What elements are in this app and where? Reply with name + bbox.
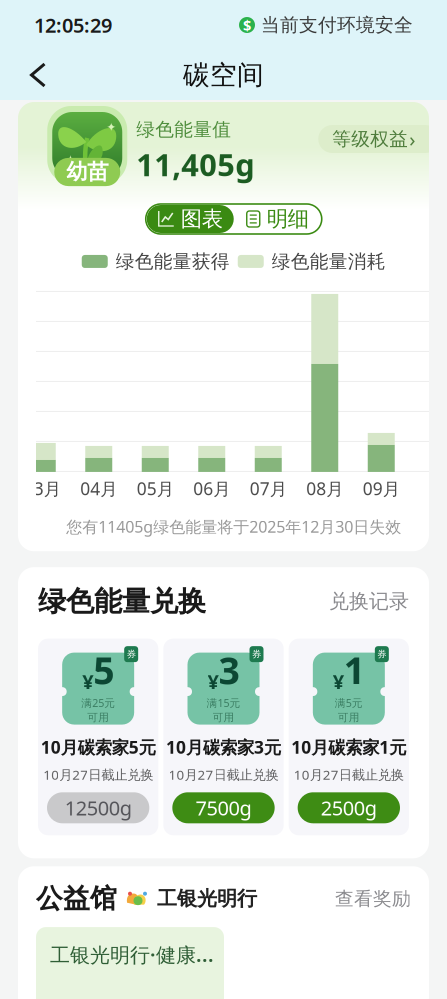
staticText: ✦ [106,120,116,134]
staticText: 12500g [65,794,132,821]
button[interactable]: 返回 [16,53,60,97]
staticText: 3 [218,645,239,695]
staticText: 5 [93,645,114,695]
staticText: 满5元 [335,696,363,710]
staticText: $ [243,15,251,35]
staticText: 10月27日截止兑换 [43,766,153,783]
staticText: 碳空间 [183,59,264,91]
staticText: 绿色能量获得 [116,250,230,273]
staticText: 绿色能量值 [136,118,231,141]
staticText: 工银光明行 [157,886,257,911]
staticText: 您有11405g绿色能量将于2025年12月30日失效 [66,516,401,537]
staticText: 明细 [267,206,309,232]
staticText: 券 [127,648,136,660]
staticText: 11,405g [136,144,254,185]
button[interactable]: 图表 [147,205,234,233]
button[interactable]: 明细 [234,205,321,233]
staticText: ¥ [333,668,344,695]
staticText: ✦ [64,152,77,170]
staticText: 03月 [24,477,61,500]
staticText: 06月 [193,477,230,500]
staticText: 10月碳索家5元 [41,736,156,759]
staticText: 10月碳索家1元 [291,736,406,759]
button[interactable]: 兑换记录 [329,589,409,614]
staticText: 09月 [363,477,400,500]
button[interactable]: 等级权益 [318,104,439,153]
staticText: 公益馆 [36,882,117,915]
staticText: 查看奖励 [335,887,411,910]
staticText: 绿色能量兑换 [38,584,206,619]
button[interactable]: 查看奖励 [335,887,411,910]
staticText: 图表 [181,206,223,232]
staticText: 10月27日截止兑换 [168,766,278,783]
staticText: 可用 [87,711,109,724]
staticText: 券 [377,648,386,660]
staticText: 1 [344,645,365,695]
staticText: 工银光明行·健康快车 [50,941,224,968]
staticText: 绿色能量消耗 [272,250,386,273]
staticText: 07月 [250,477,287,500]
staticText: 券 [252,648,261,660]
staticText: 08月 [306,477,343,500]
staticText: › [409,126,415,152]
button[interactable]: ¥ [38,639,158,835]
staticText: 等级权益 [332,127,408,150]
staticText: 10月碳索家3元 [166,736,281,759]
staticText: 满15元 [206,696,240,710]
staticText: 幼苗 [66,159,108,185]
staticText: 2500g [321,794,377,821]
staticText: 可用 [338,711,360,724]
staticText: 12:05:29 [34,12,112,38]
staticText: 可用 [212,711,234,724]
button[interactable]: ¥ [289,639,409,835]
staticText: 当前支付环境安全 [261,13,413,36]
staticText: 兑换记录 [329,589,409,614]
staticText: 10月27日截止兑换 [294,766,404,783]
staticText: 7500g [195,794,251,821]
button[interactable]: ¥ [163,639,284,835]
staticText: ¥ [82,668,93,695]
staticText: ¥ [207,668,218,695]
staticText: 05月 [137,477,174,500]
staticText: 满25元 [81,696,115,710]
staticText: 04月 [80,477,117,500]
